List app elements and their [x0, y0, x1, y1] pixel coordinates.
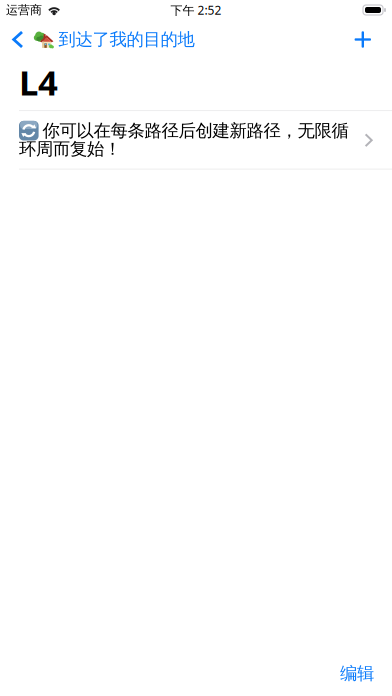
button[interactable]: 编辑 — [326, 651, 392, 696]
button[interactable]: 到达了我的目的地 — [0, 24, 203, 55]
staticText: L4 — [19, 59, 58, 105]
staticText: 下午 2:52 — [170, 2, 221, 18]
staticText: 环周而复始！ — [19, 138, 121, 160]
button[interactable]: Add — [339, 24, 392, 55]
staticText: 编辑 — [340, 663, 374, 684]
staticText: 你可以在每条路径后创建新路径，无限循 — [43, 120, 349, 141]
staticText: 到达了我的目的地 — [59, 29, 195, 50]
staticText: 运营商 — [6, 3, 42, 17]
button[interactable]: 你可以在每条路径后创建新路径，无限循 — [0, 111, 392, 169]
